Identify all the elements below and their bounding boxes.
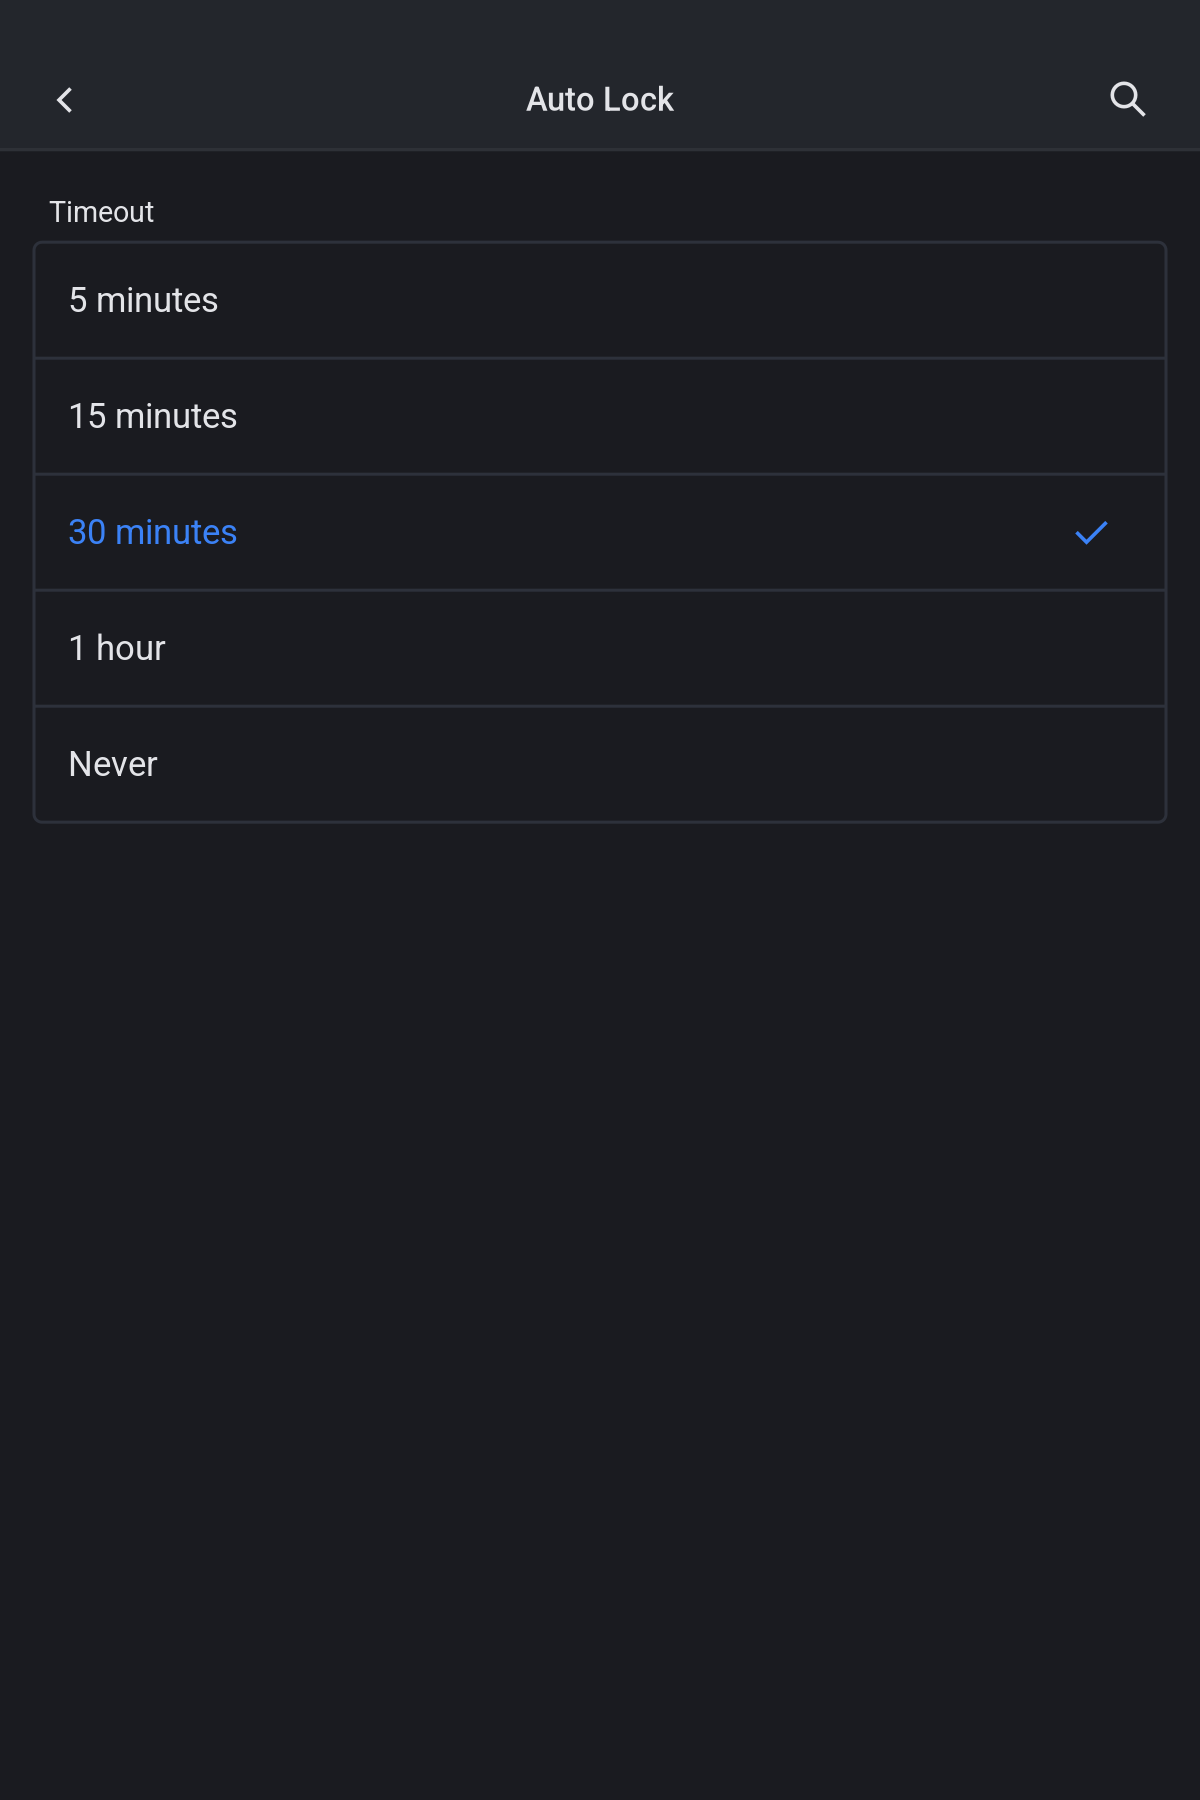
staticText: Timeout xyxy=(49,195,154,229)
staticText: 1 hour xyxy=(68,628,166,668)
staticText: Auto Lock xyxy=(526,81,674,119)
button[interactable]: 5 minutes xyxy=(34,244,1166,357)
staticText: 5 minutes xyxy=(68,280,219,320)
button[interactable]: 15 minutes xyxy=(34,360,1166,473)
button[interactable]: Back xyxy=(23,49,107,148)
button[interactable]: Never xyxy=(34,708,1166,821)
button[interactable]: Search xyxy=(1085,49,1169,148)
staticText: 15 minutes xyxy=(68,396,238,436)
button[interactable]: 30 minutes xyxy=(34,476,1166,589)
staticText: Never xyxy=(68,744,158,784)
staticText: 30 minutes xyxy=(68,512,238,552)
button[interactable]: 1 hour xyxy=(34,592,1166,705)
